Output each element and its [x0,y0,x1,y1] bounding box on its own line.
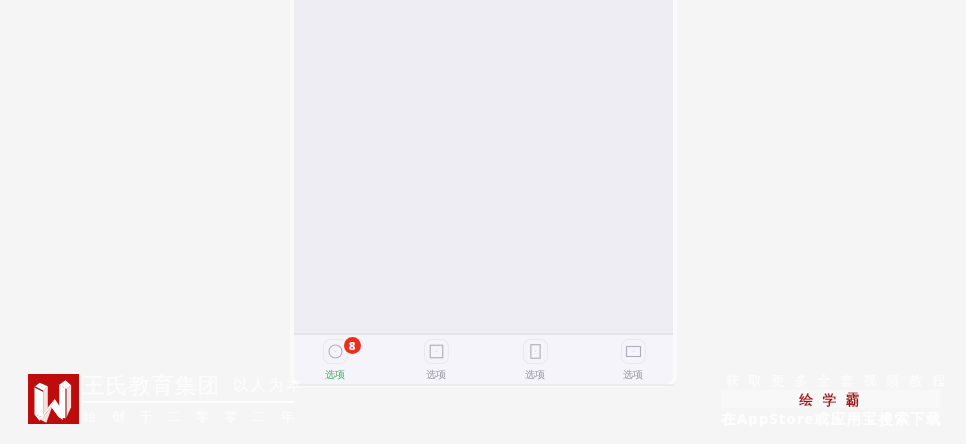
staticText: 选项 [525,368,545,381]
staticText: 绘学霸 [799,392,869,410]
button[interactable]: 选项 [483,335,578,384]
staticText: 8 [349,338,356,353]
staticText: 选项 [325,368,345,381]
button[interactable]: 选项 [389,335,484,384]
staticText: 选项 [623,368,643,381]
button[interactable]: 选项 [294,335,389,384]
staticText: 在AppStore或应用宝搜索下载 [721,408,942,428]
button[interactable]: 选项 [578,335,673,384]
staticText: 选项 [426,368,446,381]
